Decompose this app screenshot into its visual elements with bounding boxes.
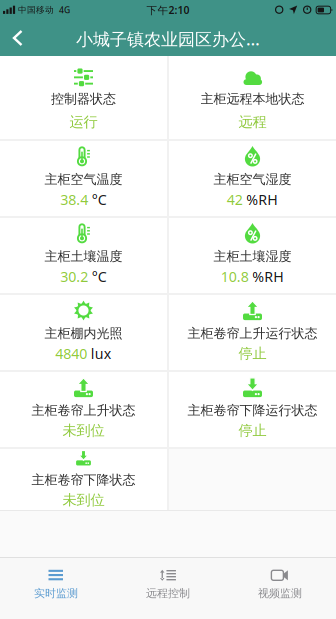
staticText: 42 xyxy=(227,190,243,209)
button[interactable]: 主柜远程本地状态 xyxy=(169,56,336,139)
staticText: 主柜卷帘上升运行状态 xyxy=(187,325,317,341)
staticText: 10.8 xyxy=(221,267,249,286)
staticText: 停止 xyxy=(238,422,266,439)
staticText: 主柜卷帘上升状态 xyxy=(31,402,135,418)
staticText: 小城子镇农业园区办公… xyxy=(76,28,260,50)
staticText: 运行 xyxy=(69,113,97,131)
staticText: 中国移动 xyxy=(18,5,54,15)
staticText: 远程控制 xyxy=(146,586,190,600)
staticText: 主柜空气温度 xyxy=(44,171,122,187)
staticText: 38.4 xyxy=(60,190,88,209)
staticText: 主柜棚内光照 xyxy=(44,325,122,341)
staticText: 未到位 xyxy=(62,491,104,509)
staticText: 远程 xyxy=(238,113,266,131)
button[interactable]: 主柜卷帘上升状态 xyxy=(0,372,167,447)
button[interactable]: 主柜土壤湿度 xyxy=(169,218,336,293)
staticText: 4G xyxy=(59,4,70,16)
button[interactable]: 主柜棚内光照 xyxy=(0,295,167,370)
button[interactable]: 主柜卷帘下降状态 xyxy=(0,449,167,510)
button[interactable]: 主柜空气湿度 xyxy=(169,141,336,216)
staticText: 主柜空气湿度 xyxy=(213,171,291,187)
staticText: 主柜土壤湿度 xyxy=(213,248,291,264)
staticText: 控制器状态 xyxy=(51,91,116,107)
staticText: 停止 xyxy=(238,345,266,362)
staticText: 主柜土壤温度 xyxy=(44,248,122,264)
staticText: 主柜远程本地状态 xyxy=(200,91,304,107)
button[interactable]: 控制器状态 xyxy=(0,56,167,139)
staticText: 主柜卷帘下降状态 xyxy=(31,472,135,488)
staticText: 实时监测 xyxy=(34,586,78,600)
staticText: 未到位 xyxy=(62,422,104,439)
staticText: 下午2:10 xyxy=(146,3,189,17)
button[interactable]: 主柜空气温度 xyxy=(0,141,167,216)
staticText: 4840 xyxy=(55,344,87,363)
button[interactable]: 主柜卷帘下降运行状态 xyxy=(169,372,336,447)
staticText: %RH xyxy=(252,267,284,286)
staticText: °C xyxy=(92,190,107,209)
staticText: 主柜卷帘下降运行状态 xyxy=(187,402,317,418)
staticText: %RH xyxy=(246,190,278,209)
staticText: °C xyxy=(92,267,107,286)
button[interactable]: 主柜土壤温度 xyxy=(0,218,167,293)
button[interactable]: 视频监测 xyxy=(224,561,336,609)
button[interactable]: 主柜卷帘上升运行状态 xyxy=(169,295,336,370)
button[interactable]: 实时监测 xyxy=(0,561,112,609)
button[interactable]: 远程控制 xyxy=(112,561,224,609)
staticText: 视频监测 xyxy=(258,586,302,600)
staticText: lux xyxy=(91,344,112,363)
staticText: 30.2 xyxy=(60,267,88,286)
button[interactable]: Back xyxy=(0,20,24,56)
